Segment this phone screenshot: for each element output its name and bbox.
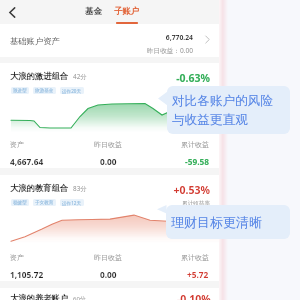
staticText: 子女教育 [35, 200, 54, 206]
staticText: 大浪的激进组合 [10, 71, 69, 81]
staticText: 资产 [10, 253, 24, 262]
staticText: 子账户 [114, 6, 140, 17]
staticText: 0.00 [100, 156, 117, 167]
staticText: 大浪的教育组合 [10, 183, 69, 193]
button[interactable]: 子女教育 [33, 199, 56, 206]
staticText: 昨日收益 [94, 253, 122, 262]
button[interactable]: 激进型 [11, 87, 29, 94]
staticText: 83分 [73, 184, 87, 193]
staticText: 资产 [10, 140, 24, 149]
staticText: 累计收益率 [182, 200, 210, 207]
button[interactable]: 旅游基金 [33, 87, 56, 94]
button[interactable]: 大浪的养老账户 [0, 288, 220, 300]
button[interactable]: 对比各账户的风险 与收益更直观 [167, 86, 290, 134]
button[interactable]: 基金 [85, 6, 102, 17]
staticText: -0.10% [177, 292, 211, 300]
staticText: 1,105.72 [10, 269, 44, 280]
staticText: 昨日收益 [94, 140, 122, 149]
staticText: 4,667.64 [10, 156, 44, 167]
staticText: 基金 [85, 6, 102, 17]
staticText: +0.53% [173, 183, 210, 197]
staticText: 运作12天 [62, 200, 82, 206]
staticText: 旅游基金 [35, 88, 54, 94]
staticText: 累计收益 [181, 253, 209, 262]
staticText: -59.58 [185, 156, 209, 167]
staticText: 0.00 [100, 269, 117, 280]
staticText: 6,770.24 [165, 33, 193, 42]
button[interactable]: 理财目标更清晰 [166, 205, 290, 239]
button[interactable]: 基础账户资产 [0, 24, 220, 57]
button[interactable]: 子账户 [114, 6, 140, 17]
staticText: 42分 [73, 72, 87, 81]
button[interactable]: 大浪的教育组合 [0, 175, 220, 281]
button[interactable]: Back [0, 0, 24, 24]
staticText: 累计收益 [181, 140, 209, 149]
staticText: 激进型 [13, 88, 27, 94]
staticText: +5.72 [187, 269, 209, 280]
button[interactable]: 大浪的激进组合 [0, 63, 220, 168]
staticText: 基础账户资产 [10, 36, 60, 46]
staticText: 60分 [73, 295, 86, 300]
button[interactable]: 运作12天 [60, 199, 84, 206]
staticText: 对比各账户的风险 与收益更直观 [172, 93, 273, 128]
staticText: 大浪的养老账户 [10, 293, 69, 300]
button[interactable]: 运作20天 [60, 87, 84, 94]
staticText: 运作20天 [62, 88, 82, 94]
staticText: 昨日收益：0.00 [146, 46, 193, 55]
staticText: -0.63% [176, 71, 210, 85]
staticText: 稳健型 [13, 200, 27, 206]
staticText: 理财目标更清晰 [171, 214, 262, 230]
button[interactable]: 稳健型 [11, 199, 29, 206]
